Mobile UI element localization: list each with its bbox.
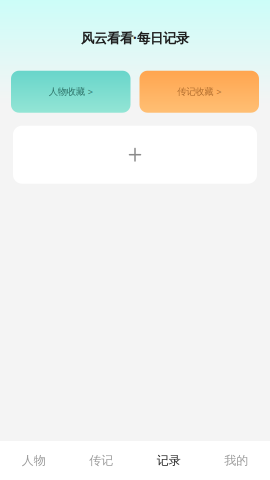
staticText: 传记 bbox=[89, 453, 113, 468]
staticText: 人物收藏 bbox=[49, 86, 85, 97]
button[interactable]: 我的 bbox=[202, 441, 270, 480]
button[interactable]: 人物收藏 bbox=[11, 71, 130, 113]
staticText: 风云看看·每日记录 bbox=[81, 29, 189, 47]
staticText: 我的 bbox=[224, 453, 248, 468]
staticText: 记录 bbox=[157, 453, 181, 468]
button[interactable]: 人物 bbox=[0, 441, 67, 480]
button[interactable]: Add record bbox=[13, 126, 257, 184]
staticText: 传记收藏 bbox=[177, 86, 213, 97]
staticText: > bbox=[88, 85, 93, 98]
staticText: 人物 bbox=[22, 453, 46, 468]
button[interactable]: 传记 bbox=[67, 441, 135, 480]
staticText: > bbox=[216, 85, 221, 98]
button[interactable]: 记录 bbox=[135, 441, 202, 480]
button[interactable]: 传记收藏 bbox=[139, 71, 259, 113]
